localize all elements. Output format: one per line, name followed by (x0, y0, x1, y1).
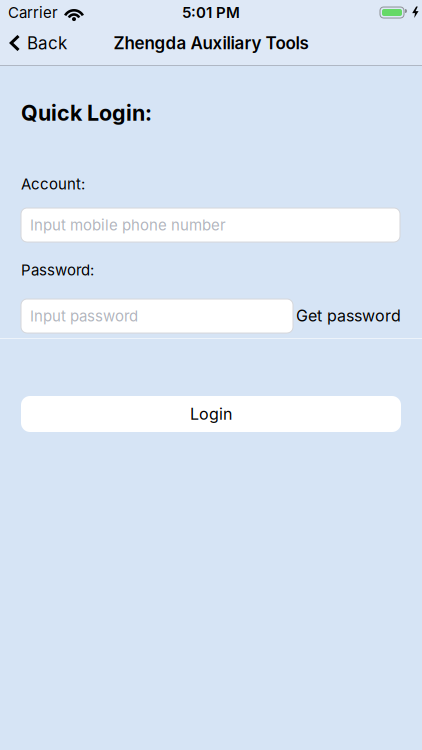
staticText: Carrier (8, 3, 58, 21)
staticText: Back (27, 33, 67, 53)
staticText: Input mobile phone number (30, 216, 226, 234)
staticText: 5:01 PM (182, 3, 240, 21)
button[interactable]: Back (0, 33, 67, 53)
staticText: Input password (30, 307, 138, 325)
staticText: Zhengda Auxiliary Tools (113, 33, 308, 53)
staticText: Password: (21, 261, 94, 279)
staticText: Get password (296, 306, 401, 325)
staticText: Account: (21, 175, 85, 193)
staticText: Quick Login: (21, 100, 152, 126)
button[interactable]: Get password (296, 306, 401, 325)
staticText: Login (190, 404, 232, 424)
button[interactable]: Login (21, 396, 401, 432)
button[interactable]: Input mobile phone number (21, 208, 400, 242)
button[interactable]: Input password (21, 299, 293, 333)
